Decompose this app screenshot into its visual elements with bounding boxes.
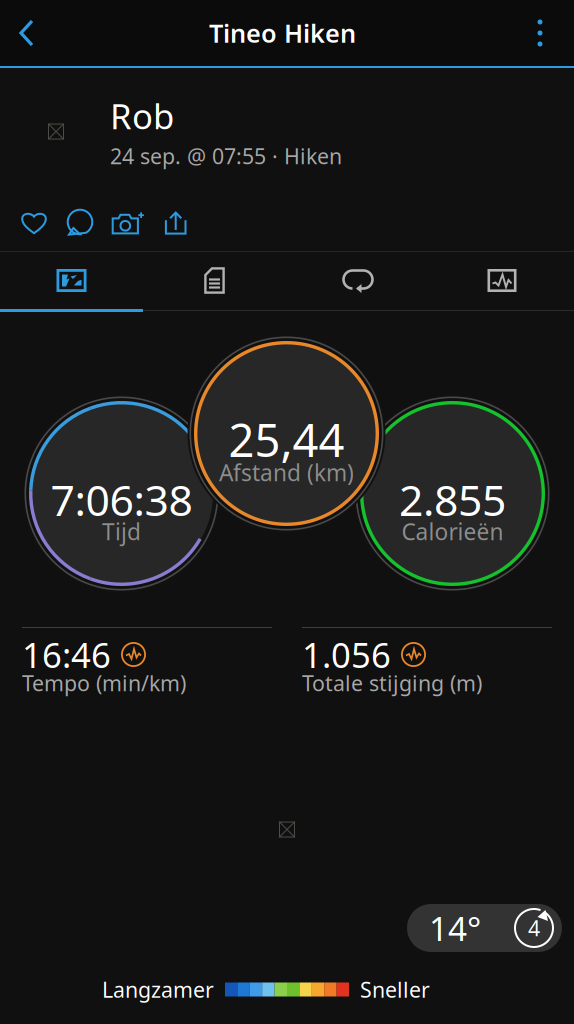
button[interactable]: Like — [11, 195, 57, 251]
staticText: Sneller — [360, 975, 430, 1004]
staticText: 2.855 — [399, 471, 506, 528]
button[interactable]: Details — [143, 252, 286, 309]
staticText: 4 — [528, 914, 540, 942]
staticText: Tineo Hiken — [209, 16, 356, 50]
button[interactable]: More options — [514, 0, 574, 66]
staticText: Tempo (min/km) — [22, 669, 186, 697]
staticText: 24 sep. @ 07:55 · Hiken — [110, 142, 342, 170]
image — [279, 821, 295, 837]
staticText: 14° — [429, 906, 481, 950]
staticText: Afstand (km) — [219, 457, 354, 487]
button[interactable]: Comment — [57, 195, 103, 251]
staticText: Tijd — [102, 516, 141, 546]
staticText: 7:06:38 — [50, 471, 192, 528]
staticText: 1.056 — [302, 631, 391, 677]
button[interactable]: Weather — [407, 904, 562, 952]
staticText: 25,44 — [228, 409, 344, 470]
button[interactable]: Back — [0, 0, 51, 66]
button[interactable]: Charts — [430, 252, 574, 309]
image — [48, 123, 64, 139]
button[interactable]: Map — [0, 252, 143, 309]
button[interactable]: Laps — [286, 252, 430, 309]
staticText: 16:46 — [22, 631, 111, 677]
staticText: Langzamer — [102, 975, 214, 1004]
button[interactable]: Share — [154, 195, 198, 251]
staticText: Calorieën — [401, 516, 503, 546]
staticText: Rob — [110, 93, 174, 139]
button[interactable]: Add photo — [103, 195, 154, 251]
staticText: Totale stijging (m) — [302, 669, 482, 697]
